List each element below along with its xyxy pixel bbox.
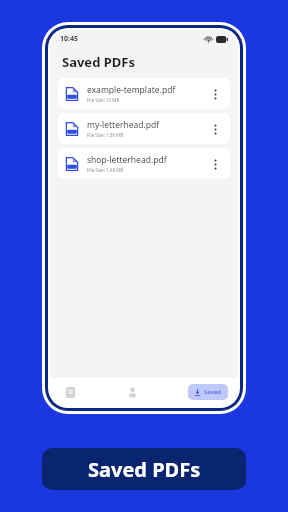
staticText: File Size: 1.56 MB bbox=[87, 132, 124, 138]
staticText: File Size: 13 MB bbox=[87, 97, 120, 103]
staticText: Saved PDFs bbox=[88, 456, 201, 483]
button[interactable]: my-letterhead.pdf bbox=[58, 113, 230, 144]
staticText: my-letterhead.pdf bbox=[87, 119, 160, 131]
staticText: 10:45 bbox=[60, 34, 78, 44]
button[interactable]: shop-letterhead.pdf bbox=[58, 148, 230, 179]
button[interactable]: Profile bbox=[122, 382, 142, 402]
staticText: Saved bbox=[204, 388, 222, 396]
button[interactable]: Documents bbox=[60, 382, 80, 402]
staticText: example-template.pdf bbox=[87, 84, 176, 96]
staticText: File Size: 1.68 MB bbox=[87, 167, 124, 173]
staticText: shop-letterhead.pdf bbox=[87, 154, 167, 166]
staticText: Saved PDFs bbox=[62, 53, 135, 71]
button[interactable]: More options bbox=[207, 86, 223, 102]
button[interactable]: More options bbox=[207, 121, 223, 137]
button[interactable]: Saved bbox=[188, 384, 228, 400]
button[interactable]: More options bbox=[207, 156, 223, 172]
button[interactable]: example-template.pdf bbox=[58, 78, 230, 109]
